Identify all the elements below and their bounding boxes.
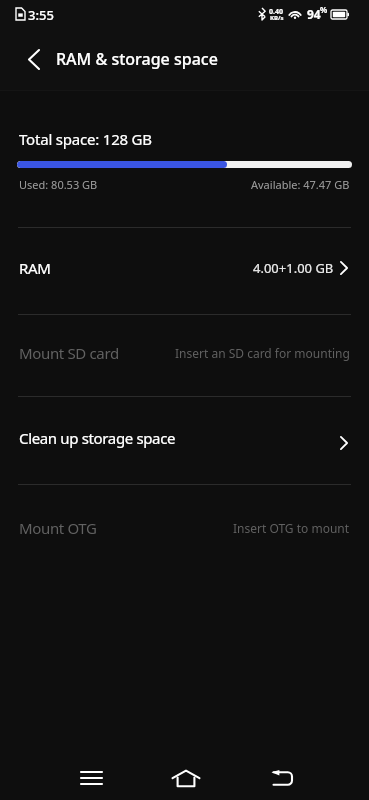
button[interactable]: Clean up storage space (0, 397, 369, 484)
button[interactable]: Back (257, 754, 305, 800)
button[interactable]: RAM (0, 228, 369, 314)
staticText: Mount OTG (19, 518, 97, 538)
button[interactable]: Home (162, 754, 210, 800)
staticText: 0.40 (269, 7, 283, 17)
button[interactable]: Mount OTG (0, 485, 369, 576)
staticText: Insert an SD card for mounting (175, 345, 350, 361)
staticText: Insert OTG to mount (233, 520, 350, 536)
staticText: 94 (307, 6, 321, 22)
staticText: 4.00+1.00 GB (253, 259, 334, 277)
staticText: RAM (19, 258, 51, 278)
staticText: RAM & storage space (56, 48, 218, 70)
staticText: % (320, 4, 328, 15)
button[interactable]: Recent apps (67, 754, 115, 800)
staticText: Mount SD card (19, 343, 119, 363)
staticText: Used: 80.53 GB (19, 177, 98, 192)
button[interactable]: Back (0, 28, 56, 90)
staticText: Available: 47.47 GB (251, 177, 350, 192)
button[interactable]: Mount SD card (0, 315, 369, 396)
staticText: Clean up storage space (19, 428, 176, 448)
staticText: KB/s (270, 14, 284, 22)
staticText: 3:55 (28, 6, 54, 24)
staticText: Total space: 128 GB (19, 129, 152, 149)
